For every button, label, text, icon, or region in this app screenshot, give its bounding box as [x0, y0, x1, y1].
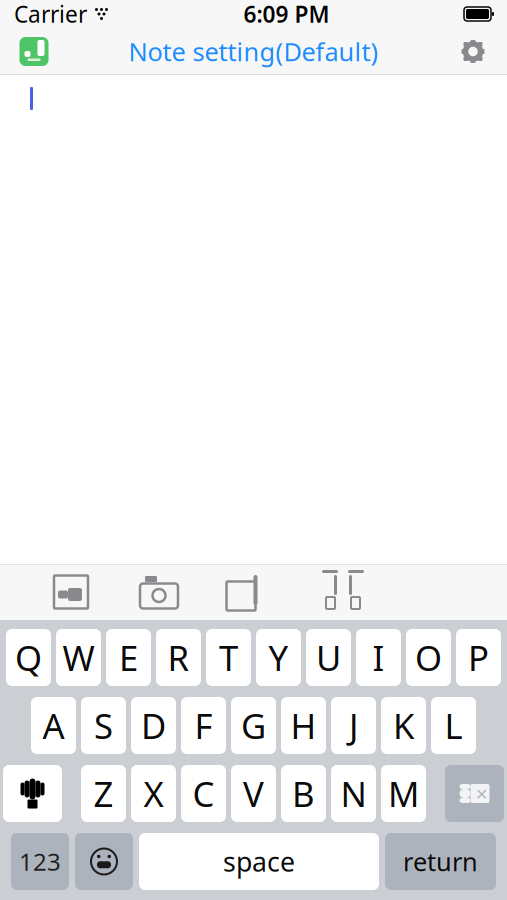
button[interactable]: return	[385, 833, 496, 890]
staticText: Carrier	[14, 0, 87, 29]
staticText: Q	[15, 634, 42, 680]
staticText: return	[403, 845, 478, 878]
button[interactable]: Note setting(Default)	[128, 35, 378, 68]
button[interactable]: L	[431, 697, 476, 754]
button[interactable]: J	[331, 697, 376, 754]
staticText: P	[468, 634, 489, 680]
button[interactable]: Z	[81, 765, 126, 822]
button[interactable]: A	[31, 697, 76, 754]
button[interactable]: R	[156, 629, 201, 686]
button[interactable]: Y	[256, 629, 301, 686]
button[interactable]: M	[381, 765, 426, 822]
staticText: V	[243, 770, 264, 816]
button[interactable]: Checklist	[218, 567, 272, 617]
staticText: S	[94, 702, 113, 748]
button[interactable]: C	[181, 765, 226, 822]
button[interactable]: I	[356, 629, 401, 686]
button[interactable]: V	[231, 765, 276, 822]
button[interactable]: T	[206, 629, 251, 686]
staticText: I	[372, 634, 384, 680]
staticText: H	[290, 702, 316, 748]
button[interactable]: Export	[316, 567, 370, 617]
staticText: U	[316, 634, 341, 680]
staticText: B	[292, 770, 315, 816]
staticText: W	[62, 634, 94, 680]
button[interactable]: S	[81, 697, 126, 754]
staticText: M	[388, 770, 419, 816]
button[interactable]: Shift	[3, 765, 62, 822]
staticText: N	[340, 770, 366, 816]
staticText: D	[141, 702, 166, 748]
staticText: F	[194, 702, 212, 748]
button[interactable]: D	[131, 697, 176, 754]
staticText: J	[349, 702, 358, 748]
staticText: E	[119, 634, 138, 680]
staticText: C	[192, 770, 214, 816]
button[interactable]: B	[281, 765, 326, 822]
button[interactable]: W	[56, 629, 101, 686]
button[interactable]: P	[456, 629, 501, 686]
button[interactable]: U	[306, 629, 351, 686]
button[interactable]: Delete	[445, 765, 504, 822]
staticText: X	[143, 770, 163, 816]
button[interactable]: O	[406, 629, 451, 686]
staticText: R	[167, 634, 189, 680]
button[interactable]: Photo library	[44, 567, 98, 617]
staticText: Note setting(Default)	[128, 35, 378, 68]
button[interactable]: H	[281, 697, 326, 754]
staticText: A	[42, 702, 64, 748]
staticText: Y	[268, 634, 288, 680]
button[interactable]: E	[106, 629, 151, 686]
staticText: T	[219, 634, 238, 680]
button[interactable]: G	[231, 697, 276, 754]
staticText: G	[241, 702, 266, 748]
staticText: space	[223, 844, 295, 879]
button[interactable]: 123	[11, 833, 69, 890]
button[interactable]: New note	[6, 28, 62, 75]
staticText: L	[444, 702, 462, 748]
button[interactable]: Q	[6, 629, 51, 686]
button[interactable]: K	[381, 697, 426, 754]
button[interactable]: space	[139, 833, 379, 890]
button[interactable]: X	[131, 765, 176, 822]
staticText: 123	[19, 846, 61, 877]
staticText: K	[393, 702, 414, 748]
button[interactable]: Camera	[132, 567, 186, 617]
staticText: 6:09 PM	[243, 0, 329, 29]
staticText: Z	[93, 770, 113, 816]
staticText: ×	[476, 780, 487, 807]
button[interactable]: Emoji	[75, 833, 133, 890]
staticText: O	[415, 634, 442, 680]
button[interactable]: N	[331, 765, 376, 822]
button[interactable]: Settings	[445, 28, 501, 75]
button[interactable]: F	[181, 697, 226, 754]
